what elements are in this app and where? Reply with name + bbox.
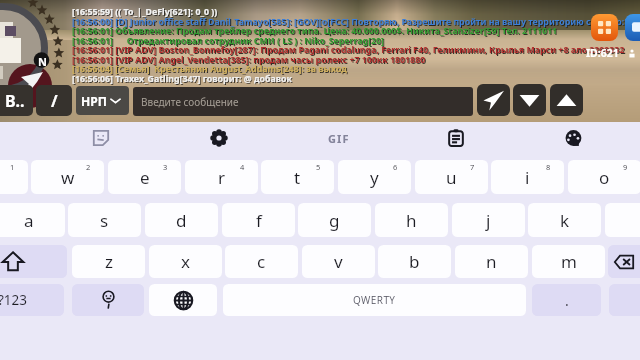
staticText: . <box>565 291 569 310</box>
button[interactable]: o <box>568 160 640 194</box>
staticText: t <box>294 166 301 189</box>
button[interactable]: Screen <box>625 14 640 41</box>
button[interactable]: Language <box>149 284 217 316</box>
staticText: [16:56:01] Объявление: Продам трейлер ср… <box>73 26 559 38</box>
button[interactable]: v <box>302 245 375 278</box>
staticText: e <box>140 166 150 189</box>
staticText: d <box>176 209 187 232</box>
staticText: [16:55:59] (( To_|_DeFly[621]: 0_0 )) <box>72 6 218 18</box>
button[interactable]: a <box>0 203 65 237</box>
staticText: [16:56:04] [Семья] Крестьянин August_Add… <box>72 63 347 75</box>
staticText: / <box>51 90 58 112</box>
staticText: m <box>561 250 577 273</box>
button[interactable]: r <box>185 160 258 194</box>
button[interactable]: j <box>452 203 525 237</box>
button[interactable]: b <box>378 245 451 278</box>
button[interactable]: Введите сообщение <box>133 87 473 116</box>
button[interactable]: Menu <box>591 14 618 41</box>
button[interactable]: Send <box>477 84 510 116</box>
button[interactable]: . <box>532 284 601 316</box>
staticText: b <box>409 250 420 273</box>
button[interactable]: k <box>528 203 601 237</box>
staticText: g <box>329 209 340 232</box>
button[interactable]: h <box>375 203 448 237</box>
button[interactable]: f <box>222 203 295 237</box>
staticText: s <box>100 209 109 232</box>
staticText: [16:56:01] [VIP ADV] Boston_Bonnefoy[287… <box>73 45 626 57</box>
staticText: z <box>105 250 113 273</box>
staticText: B.. <box>5 90 25 112</box>
staticText: 5 <box>316 162 321 172</box>
staticText: [16:56:04] [Семья] Крестьянин August_Add… <box>73 64 348 76</box>
staticText: 2 <box>86 162 91 172</box>
staticText: o <box>599 166 610 189</box>
staticText: n <box>486 250 497 273</box>
staticText: y <box>370 166 379 189</box>
staticText: 3 <box>163 162 168 172</box>
staticText: QWERTY <box>353 293 396 307</box>
button[interactable]: Scroll up <box>550 84 583 116</box>
button[interactable]: ?123 <box>0 284 64 316</box>
button[interactable]: GIF <box>320 126 358 151</box>
button[interactable]: q <box>0 160 28 194</box>
staticText: [16:56:00] [D] Junior office staff Danil… <box>72 16 640 28</box>
staticText: 8 <box>546 162 551 172</box>
staticText: [16:56:01] [VIP ADV] Angel_Vendetta[385]… <box>73 55 427 67</box>
button[interactable]: Stickers <box>85 122 117 154</box>
button[interactable]: w <box>31 160 104 194</box>
staticText: 9 <box>623 162 628 172</box>
button[interactable]: g <box>298 203 371 237</box>
staticText: [16:56:01] Объявление: Продам трейлер ср… <box>72 25 558 37</box>
staticText: [16:56:01] Отредактировал сотрудник СМИ … <box>72 35 385 47</box>
button[interactable]: НРП <box>76 86 129 115</box>
button[interactable]: m <box>532 245 605 278</box>
button[interactable]: s <box>68 203 141 237</box>
staticText: ID:621 <box>586 46 619 60</box>
button[interactable]: Emoji <box>72 284 144 316</box>
staticText: [16:56:06] Traxex_Gatling[347] говорит: … <box>73 74 293 86</box>
button[interactable]: c <box>225 245 298 278</box>
button[interactable]: t <box>261 160 334 194</box>
staticText: c <box>257 250 266 273</box>
staticText: a <box>24 209 34 232</box>
staticText: 1 <box>10 162 15 172</box>
button[interactable]: y <box>338 160 411 194</box>
staticText: i <box>525 166 530 189</box>
staticText: k <box>560 209 570 232</box>
staticText: 7 <box>470 162 475 172</box>
button[interactable]: Clipboard <box>440 122 472 154</box>
staticText: w <box>61 166 75 189</box>
staticText: u <box>446 166 457 189</box>
button[interactable]: Settings <box>203 122 235 154</box>
staticText: [16:56:01] [VIP ADV] Angel_Vendetta[385]… <box>72 54 426 66</box>
button[interactable]: Themes <box>558 122 590 154</box>
button[interactable]: Backspace <box>608 245 640 278</box>
staticText: НРП <box>81 93 107 109</box>
button[interactable]: B.. <box>0 85 33 116</box>
button[interactable]: u <box>415 160 488 194</box>
button[interactable]: i <box>491 160 564 194</box>
staticText: [16:56:00] [D] Junior office staff Danil… <box>73 17 640 29</box>
button[interactable]: x <box>149 245 222 278</box>
staticText: r <box>218 166 226 189</box>
button[interactable]: Space <box>223 284 526 316</box>
button[interactable]: / <box>36 85 72 116</box>
button[interactable]: n <box>455 245 528 278</box>
staticText: [16:55:59] (( To_|_DeFly[621]: 0_0 )) <box>73 7 219 19</box>
staticText: [16:56:06] Traxex_Gatling[347] говорит: … <box>72 73 292 85</box>
staticText: f <box>256 209 262 232</box>
button[interactable]: z <box>72 245 145 278</box>
button[interactable]: e <box>108 160 181 194</box>
button[interactable]: Shift <box>0 245 67 278</box>
button[interactable]: Scroll down <box>513 84 546 116</box>
staticText: [16:56:01] Отредактировал сотрудник СМИ … <box>73 36 386 48</box>
staticText: N <box>38 54 47 69</box>
staticText: v <box>334 250 343 273</box>
staticText: GIF <box>328 131 350 146</box>
staticText: ?123 <box>0 291 28 309</box>
button[interactable]: d <box>145 203 218 237</box>
staticText: 6 <box>393 162 398 172</box>
